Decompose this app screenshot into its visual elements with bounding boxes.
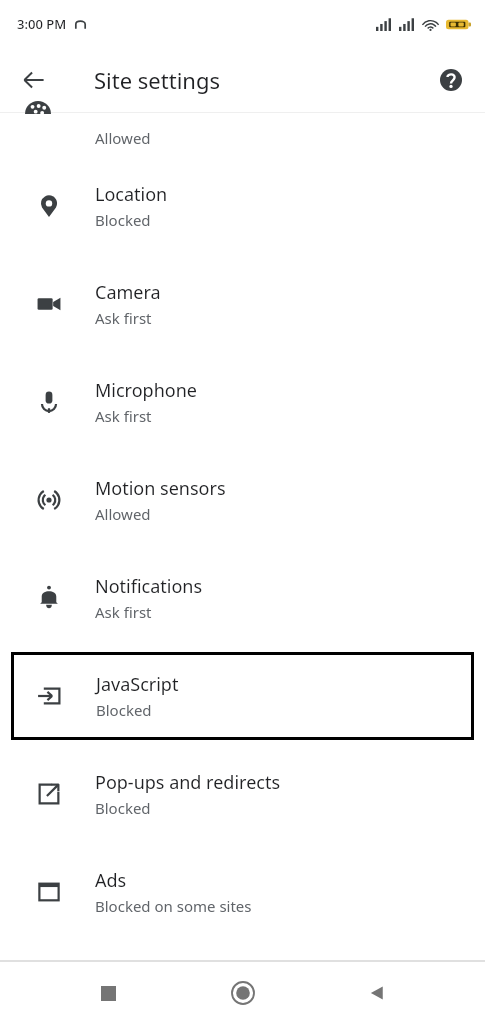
staticText: Camera	[95, 280, 161, 305]
staticText: Ask first	[95, 308, 152, 328]
staticText: Blocked	[96, 700, 152, 720]
button[interactable]: Ads	[0, 843, 485, 941]
staticText: Location	[95, 182, 168, 207]
button[interactable]: JavaScript	[11, 652, 474, 740]
staticText: Site settings	[94, 65, 220, 95]
button[interactable]: Home	[217, 967, 269, 1019]
button[interactable]: Notifications	[0, 549, 485, 647]
staticText: Ads	[95, 868, 127, 893]
staticText: Allowed	[95, 128, 151, 148]
staticText: Blocked	[95, 210, 151, 230]
staticText: Notifications	[95, 574, 203, 599]
button[interactable]: Motion sensors	[0, 451, 485, 549]
button[interactable]: Help	[427, 56, 475, 104]
button[interactable]: Allowed	[0, 113, 485, 157]
staticText: Motion sensors	[95, 476, 226, 501]
staticText: Allowed	[95, 504, 151, 524]
staticText: Blocked	[95, 798, 151, 818]
button[interactable]: Pop-ups and redirects	[0, 745, 485, 843]
button[interactable]: Location	[0, 157, 485, 255]
staticText: Ask first	[95, 602, 152, 622]
staticText: 3:00 PM	[17, 15, 67, 33]
button[interactable]: Back	[351, 967, 403, 1019]
button[interactable]: Camera	[0, 255, 485, 353]
button[interactable]: Back	[10, 56, 58, 104]
staticText: JavaScript	[96, 672, 179, 697]
staticText: Pop-ups and redirects	[95, 770, 281, 795]
button[interactable]: Recents	[82, 967, 134, 1019]
button[interactable]: Microphone	[0, 353, 485, 451]
staticText: Blocked on some sites	[95, 896, 252, 916]
staticText: Ask first	[95, 406, 152, 426]
staticText: Microphone	[95, 378, 197, 403]
